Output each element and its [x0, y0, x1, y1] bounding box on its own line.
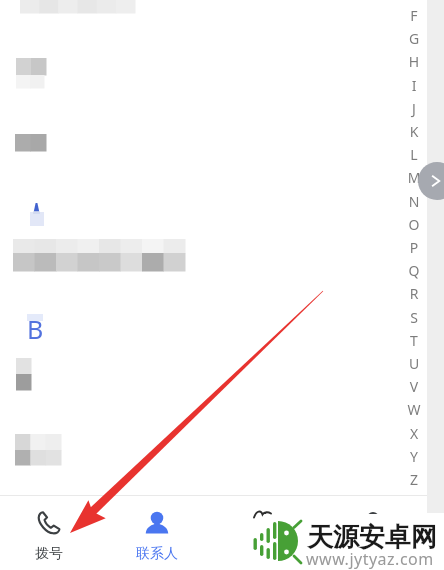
staticText: 设置 [359, 545, 387, 563]
staticText: V [402, 377, 426, 396]
staticText: X [402, 424, 426, 443]
staticText: Z [402, 470, 426, 489]
button[interactable]: 拨号 [0, 496, 103, 570]
staticText: Y [402, 447, 426, 466]
staticText: W [402, 400, 426, 419]
staticText: O [402, 215, 426, 234]
staticText: N [402, 192, 426, 211]
staticText: 联系人 [136, 545, 178, 563]
staticText: P [402, 238, 426, 257]
staticText: R [402, 284, 426, 303]
staticText: I [402, 76, 426, 95]
staticText: 收藏 [251, 545, 279, 563]
button[interactable]: Expand panel [418, 162, 444, 200]
staticText: K [402, 122, 426, 141]
staticText: U [402, 354, 426, 373]
staticText: L [402, 145, 426, 164]
button[interactable]: 收藏 [210, 496, 319, 570]
staticText: M [402, 168, 426, 187]
button[interactable]: 联系人 [102, 496, 211, 570]
button[interactable]: Alphabet index [402, 6, 426, 494]
staticText: T [402, 331, 426, 350]
staticText: H [402, 52, 426, 71]
staticText: 拨号 [35, 545, 63, 563]
staticText: www.jytyaz.com [306, 548, 434, 570]
staticText: Q [402, 261, 426, 280]
staticText: F [402, 6, 426, 25]
staticText: B [27, 312, 44, 346]
staticText: S [402, 308, 426, 327]
button[interactable]: 设置 [318, 496, 427, 570]
staticText: G [402, 29, 426, 48]
staticText: 天源安卓网 [307, 521, 437, 554]
staticText: J [402, 99, 426, 118]
